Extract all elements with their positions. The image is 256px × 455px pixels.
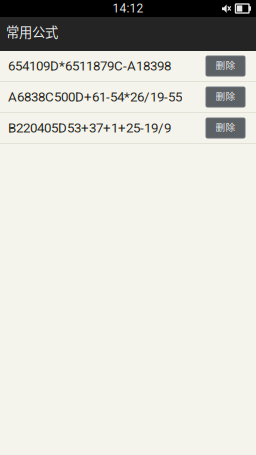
staticText: 删除 <box>215 88 235 102</box>
staticText: A6838C500D+61-54*26/19-55 <box>8 89 182 105</box>
staticText: 删除 <box>215 119 235 133</box>
staticText: 654109D*6511879C-A18398 <box>8 58 171 74</box>
staticText: B220405D53+37+1+25-19/9 <box>8 120 171 136</box>
staticText: 14:12 <box>112 1 143 16</box>
button[interactable]: 删除 <box>206 87 245 107</box>
staticText: 删除 <box>215 57 235 71</box>
staticText: 常用公式 <box>6 22 58 41</box>
button[interactable]: 删除 <box>206 118 245 138</box>
button[interactable]: 删除 <box>206 56 245 76</box>
